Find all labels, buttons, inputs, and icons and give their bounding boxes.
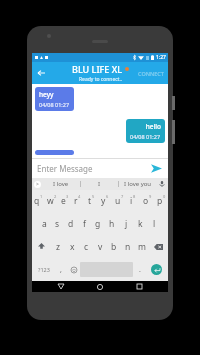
staticText: I love you — [124, 180, 152, 188]
staticText: y — [101, 195, 106, 207]
button[interactable]: . — [133, 260, 146, 279]
button[interactable]: Back — [51, 281, 71, 292]
button[interactable]: Recent apps — [129, 281, 149, 292]
staticText: c — [84, 241, 89, 253]
button[interactable]: r — [71, 190, 84, 212]
button[interactable]: Enter Message — [37, 163, 149, 174]
staticText: ?123 — [38, 266, 50, 273]
button[interactable]: heyy — [35, 87, 74, 111]
button[interactable]: Backspace — [149, 235, 168, 258]
button[interactable]: g — [91, 212, 105, 235]
staticText: 04/08 01:27 — [130, 133, 161, 140]
staticText: a — [42, 218, 47, 230]
staticText: , — [60, 265, 62, 275]
staticText: 04/08 01:27 — [39, 101, 70, 108]
button[interactable]: hello — [126, 119, 165, 143]
button[interactable]: l — [147, 212, 161, 235]
staticText: BLU LIFE XL — [72, 63, 122, 75]
button[interactable]: I love you — [119, 178, 156, 190]
button[interactable]: c — [79, 235, 93, 258]
button[interactable]: CONNECT — [136, 68, 166, 79]
staticText: 0 — [163, 194, 166, 199]
button[interactable]: Voice input — [156, 178, 168, 190]
staticText: x — [70, 241, 75, 253]
staticText: h — [109, 218, 115, 230]
staticText: v — [98, 241, 103, 253]
button[interactable]: k — [133, 212, 147, 235]
staticText: > — [36, 181, 39, 188]
button[interactable]: Shift — [32, 235, 51, 258]
button[interactable]: Send — [149, 161, 163, 175]
button[interactable]: o — [140, 190, 154, 212]
staticText: 2 — [54, 194, 57, 199]
button[interactable]: Emoji — [67, 260, 80, 279]
button[interactable]: Enter — [151, 264, 162, 275]
staticText: l — [153, 218, 156, 230]
button[interactable]: u — [112, 190, 126, 212]
staticText: 9 — [149, 194, 152, 199]
staticText: I love — [53, 180, 69, 188]
button[interactable]: d — [64, 212, 77, 235]
button[interactable]: Home — [90, 281, 110, 292]
staticText: k — [138, 218, 143, 230]
button[interactable]: h — [105, 212, 119, 235]
button[interactable]: i — [126, 190, 140, 212]
button[interactable]: q — [32, 190, 45, 212]
staticText: d — [68, 218, 74, 230]
button[interactable]: I — [81, 178, 118, 190]
staticText: Ready to connect.. — [79, 76, 123, 83]
button[interactable]: Expand suggestions — [32, 178, 42, 190]
button[interactable]: z — [51, 235, 65, 258]
staticText: t — [88, 195, 92, 207]
staticText: Enter Message — [37, 163, 93, 174]
button[interactable]: a — [38, 212, 51, 235]
staticText: I — [98, 180, 101, 188]
button[interactable]: j — [119, 212, 133, 235]
button[interactable]: w — [45, 190, 58, 212]
staticText: p — [157, 195, 163, 207]
button[interactable]: n — [121, 235, 135, 258]
button[interactable]: s — [51, 212, 64, 235]
button[interactable]: I love — [42, 178, 80, 190]
staticText: r — [74, 195, 78, 207]
button[interactable]: b — [107, 235, 121, 258]
staticText: CONNECT — [138, 70, 164, 77]
staticText: 3 — [66, 194, 69, 199]
button[interactable]: m — [135, 235, 149, 258]
button[interactable]: what's up — [35, 150, 74, 155]
button[interactable]: e — [58, 190, 71, 212]
staticText: m — [138, 241, 146, 253]
staticText: o — [143, 195, 149, 207]
staticText: i — [130, 195, 133, 207]
button[interactable]: t — [84, 190, 98, 212]
staticText: g — [95, 218, 101, 230]
button[interactable]: p — [154, 190, 168, 212]
staticText: 8 — [133, 194, 136, 199]
staticText: z — [56, 241, 60, 253]
staticText: 6 — [106, 194, 109, 199]
staticText: j — [125, 218, 128, 230]
staticText: heyy — [39, 90, 54, 99]
staticText: s — [55, 218, 60, 230]
staticText: u — [115, 195, 121, 207]
staticText: . — [139, 265, 141, 275]
staticText: 7 — [121, 194, 124, 199]
button[interactable]: f — [77, 212, 91, 235]
button[interactable]: , — [54, 260, 67, 279]
staticText: 5 — [92, 194, 95, 199]
button[interactable]: y — [98, 190, 112, 212]
staticText: 1:27 — [156, 54, 166, 61]
staticText: e — [61, 195, 66, 207]
staticText: q — [34, 195, 40, 207]
staticText: 4 — [78, 194, 81, 199]
staticText: n — [125, 241, 131, 253]
button[interactable]: Back — [34, 66, 48, 80]
staticText: w — [47, 195, 54, 207]
button[interactable]: v — [93, 235, 107, 258]
button[interactable]: x — [65, 235, 79, 258]
staticText: hello — [145, 122, 161, 131]
staticText: f — [83, 218, 86, 230]
staticText: 1 — [40, 194, 43, 199]
button[interactable]: ?123 — [34, 260, 54, 279]
